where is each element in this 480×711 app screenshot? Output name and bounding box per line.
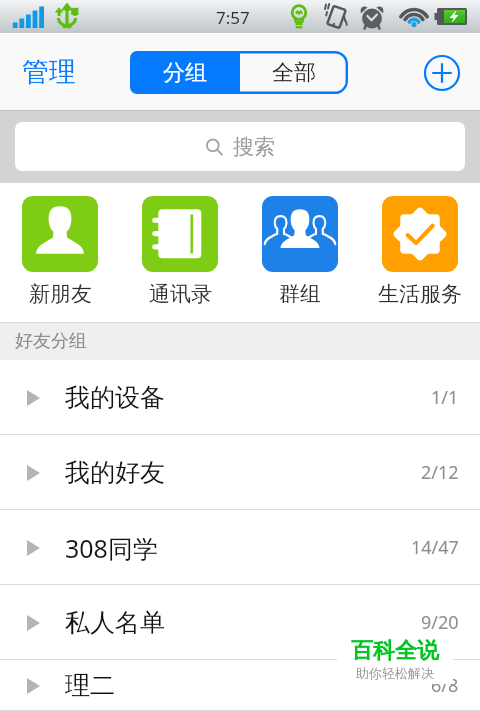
button[interactable]: 通讯录: [120, 184, 240, 312]
staticText: 搜索: [233, 134, 275, 160]
button[interactable]: 搜索: [15, 122, 465, 171]
staticText: 6/8: [431, 673, 459, 698]
staticText: 我的设备: [65, 382, 165, 413]
button[interactable]: 全部: [240, 51, 348, 94]
staticText: 14/47: [411, 535, 459, 560]
button[interactable]: 我的设备: [0, 360, 480, 435]
button[interactable]: 理二: [0, 660, 480, 711]
staticText: 百科全说: [351, 637, 439, 665]
staticText: 私人名单: [65, 607, 165, 638]
staticText: 通讯录: [149, 281, 212, 307]
button[interactable]: 308同学: [0, 510, 480, 585]
staticText: 1/1: [431, 385, 459, 410]
staticText: 我的好友: [65, 457, 165, 488]
staticText: 308同学: [65, 531, 158, 565]
button[interactable]: 生活服务: [360, 184, 480, 312]
staticText: 理二: [65, 670, 115, 701]
staticText: 2/12: [421, 460, 459, 485]
staticText: 助你轻松解决: [356, 665, 434, 681]
button[interactable]: 分组: [130, 51, 240, 94]
button[interactable]: 私人名单: [0, 585, 480, 660]
staticText: 9/20: [421, 610, 459, 635]
staticText: 新朋友: [29, 281, 92, 307]
staticText: 7:57: [216, 6, 250, 29]
button[interactable]: 我的好友: [0, 435, 480, 510]
button[interactable]: Add: [420, 51, 464, 95]
staticText: 好友分组: [15, 330, 87, 353]
button[interactable]: 新朋友: [0, 184, 120, 312]
staticText: 群组: [279, 281, 321, 307]
staticText: 生活服务: [378, 281, 462, 307]
button[interactable]: 群组: [240, 184, 360, 312]
staticText: 分组: [163, 59, 207, 87]
staticText: 全部: [272, 59, 316, 87]
button[interactable]: 管理: [22, 55, 76, 89]
